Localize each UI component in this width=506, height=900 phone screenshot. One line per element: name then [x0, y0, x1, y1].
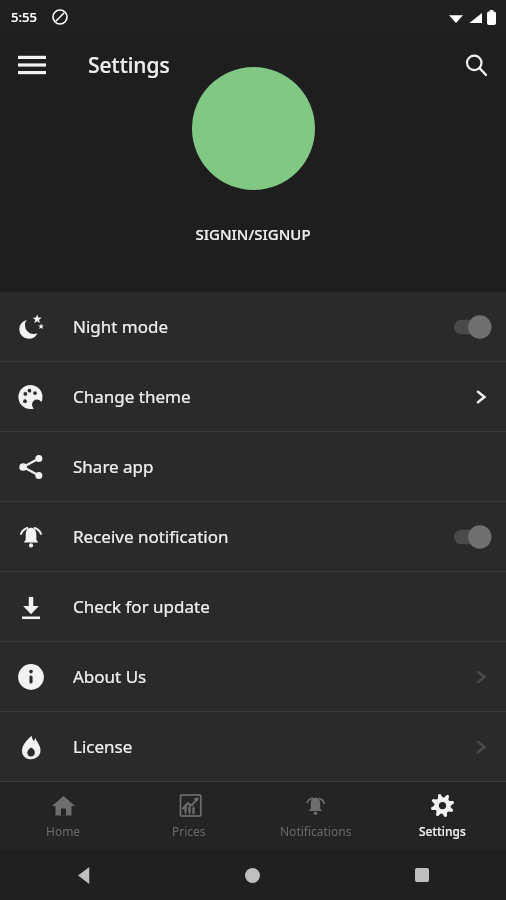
staticText: Settings: [419, 823, 466, 839]
button[interactable]: Prices: [126, 782, 252, 850]
staticText: Home: [46, 823, 81, 839]
button[interactable]: Receive notification: [0, 502, 506, 571]
staticText: Night mode: [73, 315, 169, 338]
button[interactable]: Menu: [8, 41, 56, 89]
button[interactable]: Profile avatar: [192, 67, 315, 190]
staticText: Check for update: [73, 595, 210, 618]
button[interactable]: About Us: [0, 642, 506, 711]
button[interactable]: Home: [0, 782, 126, 850]
staticText: Settings: [88, 51, 170, 80]
button[interactable]: License: [0, 712, 506, 781]
button[interactable]: Notifications: [252, 782, 379, 850]
staticText: Change theme: [73, 385, 191, 408]
button[interactable]: Home: [168, 850, 337, 900]
staticText: Receive notification: [73, 525, 229, 548]
staticText: Share app: [73, 455, 154, 478]
staticText: Prices: [172, 823, 206, 839]
staticText: About Us: [73, 665, 147, 688]
button[interactable]: Settings: [379, 782, 506, 850]
button[interactable]: Recent apps: [337, 850, 506, 900]
staticText: Notifications: [280, 823, 352, 839]
button[interactable]: Search: [452, 41, 500, 89]
staticText: License: [73, 735, 133, 758]
button[interactable]: Share app: [0, 432, 506, 501]
staticText: 5:55: [11, 8, 37, 26]
button[interactable]: Night mode: [0, 292, 506, 361]
button[interactable]: Check for update: [0, 572, 506, 641]
button[interactable]: SIGNIN/SIGNUP: [185, 220, 321, 248]
button[interactable]: Back: [0, 850, 168, 900]
button[interactable]: Change theme: [0, 362, 506, 431]
